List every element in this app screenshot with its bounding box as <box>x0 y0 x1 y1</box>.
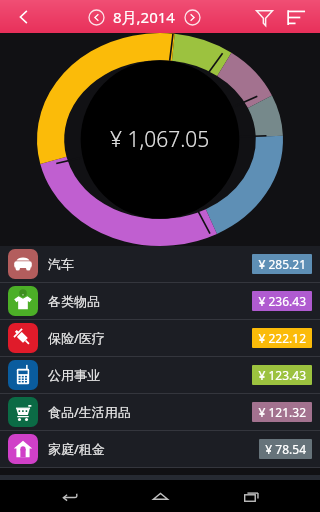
staticText: 家庭/租金 <box>48 440 105 458</box>
staticText: ¥ 236.43 <box>258 293 306 309</box>
button[interactable]: Previous month <box>83 4 109 30</box>
button[interactable]: 家庭/租金 <box>0 431 320 467</box>
staticText: ¥ 121.32 <box>258 404 306 420</box>
button[interactable]: 食品/生活用品 <box>0 394 320 430</box>
staticText: 公用事业 <box>48 367 100 383</box>
button[interactable]: 汽车 <box>0 246 320 282</box>
button[interactable]: 各类物品 <box>0 283 320 319</box>
staticText: ¥ 78.54 <box>265 441 306 457</box>
staticText: ¥ 123.43 <box>258 367 306 383</box>
staticText: 各类物品 <box>48 293 100 309</box>
staticText: 8月,2014 <box>113 7 175 27</box>
button[interactable]: Home <box>138 480 182 512</box>
staticText: 汽车 <box>48 256 74 272</box>
button[interactable]: Sort <box>280 1 312 33</box>
button[interactable]: Recents <box>229 480 273 512</box>
staticText: 食品/生活用品 <box>48 403 131 421</box>
staticText: ¥ 1,067.05 <box>110 125 210 154</box>
button[interactable]: Filter <box>248 1 280 33</box>
button[interactable]: Back <box>8 1 40 33</box>
button[interactable]: Back <box>47 480 91 512</box>
button[interactable]: 公用事业 <box>0 357 320 393</box>
button[interactable]: 保险/医疗 <box>0 320 320 356</box>
staticText: 保险/医疗 <box>48 329 105 347</box>
staticText: ¥ 222.12 <box>258 330 306 346</box>
staticText: ¥ 285.21 <box>258 256 306 272</box>
button[interactable]: Next month <box>179 4 205 30</box>
